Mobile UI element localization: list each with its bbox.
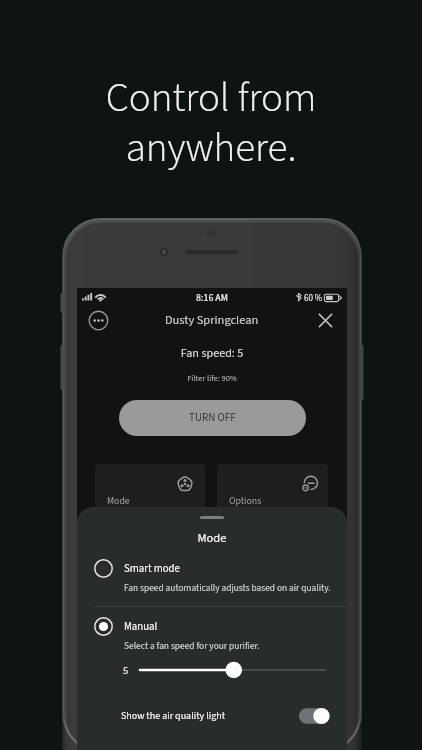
button[interactable]: Manual: [77, 617, 347, 661]
staticText: Fan speed automatically adjusts based on…: [124, 581, 331, 594]
staticText: Smart mode: [124, 561, 180, 576]
staticText: Options: [229, 494, 262, 508]
staticText: Dusty Springclean: [165, 311, 259, 329]
staticText: 5: [123, 663, 129, 678]
button[interactable]: TURN OFF: [119, 400, 306, 436]
button[interactable]: Close: [314, 309, 337, 332]
button[interactable]: Mode: [95, 464, 205, 516]
button[interactable]: Smart mode: [77, 559, 347, 603]
staticText: Fan speed: 5: [77, 345, 347, 362]
staticText: TURN OFF: [189, 410, 236, 426]
staticText: Mode: [197, 529, 227, 547]
staticText: 60 %: [304, 292, 323, 305]
button[interactable]: More options: [86, 308, 111, 333]
staticText: Control from anywhere.: [0, 69, 422, 177]
staticText: Select a fan speed for your purifier.: [124, 639, 260, 652]
staticText: Mode: [107, 494, 130, 508]
staticText: Filter life: 90%: [77, 372, 347, 384]
button[interactable]: Show the air quality light: [77, 703, 347, 729]
staticText: 8:16 AM: [196, 291, 228, 305]
staticText: Manual: [124, 619, 158, 634]
staticText: Show the air quality light: [121, 709, 226, 723]
button[interactable]: Options: [217, 464, 328, 516]
